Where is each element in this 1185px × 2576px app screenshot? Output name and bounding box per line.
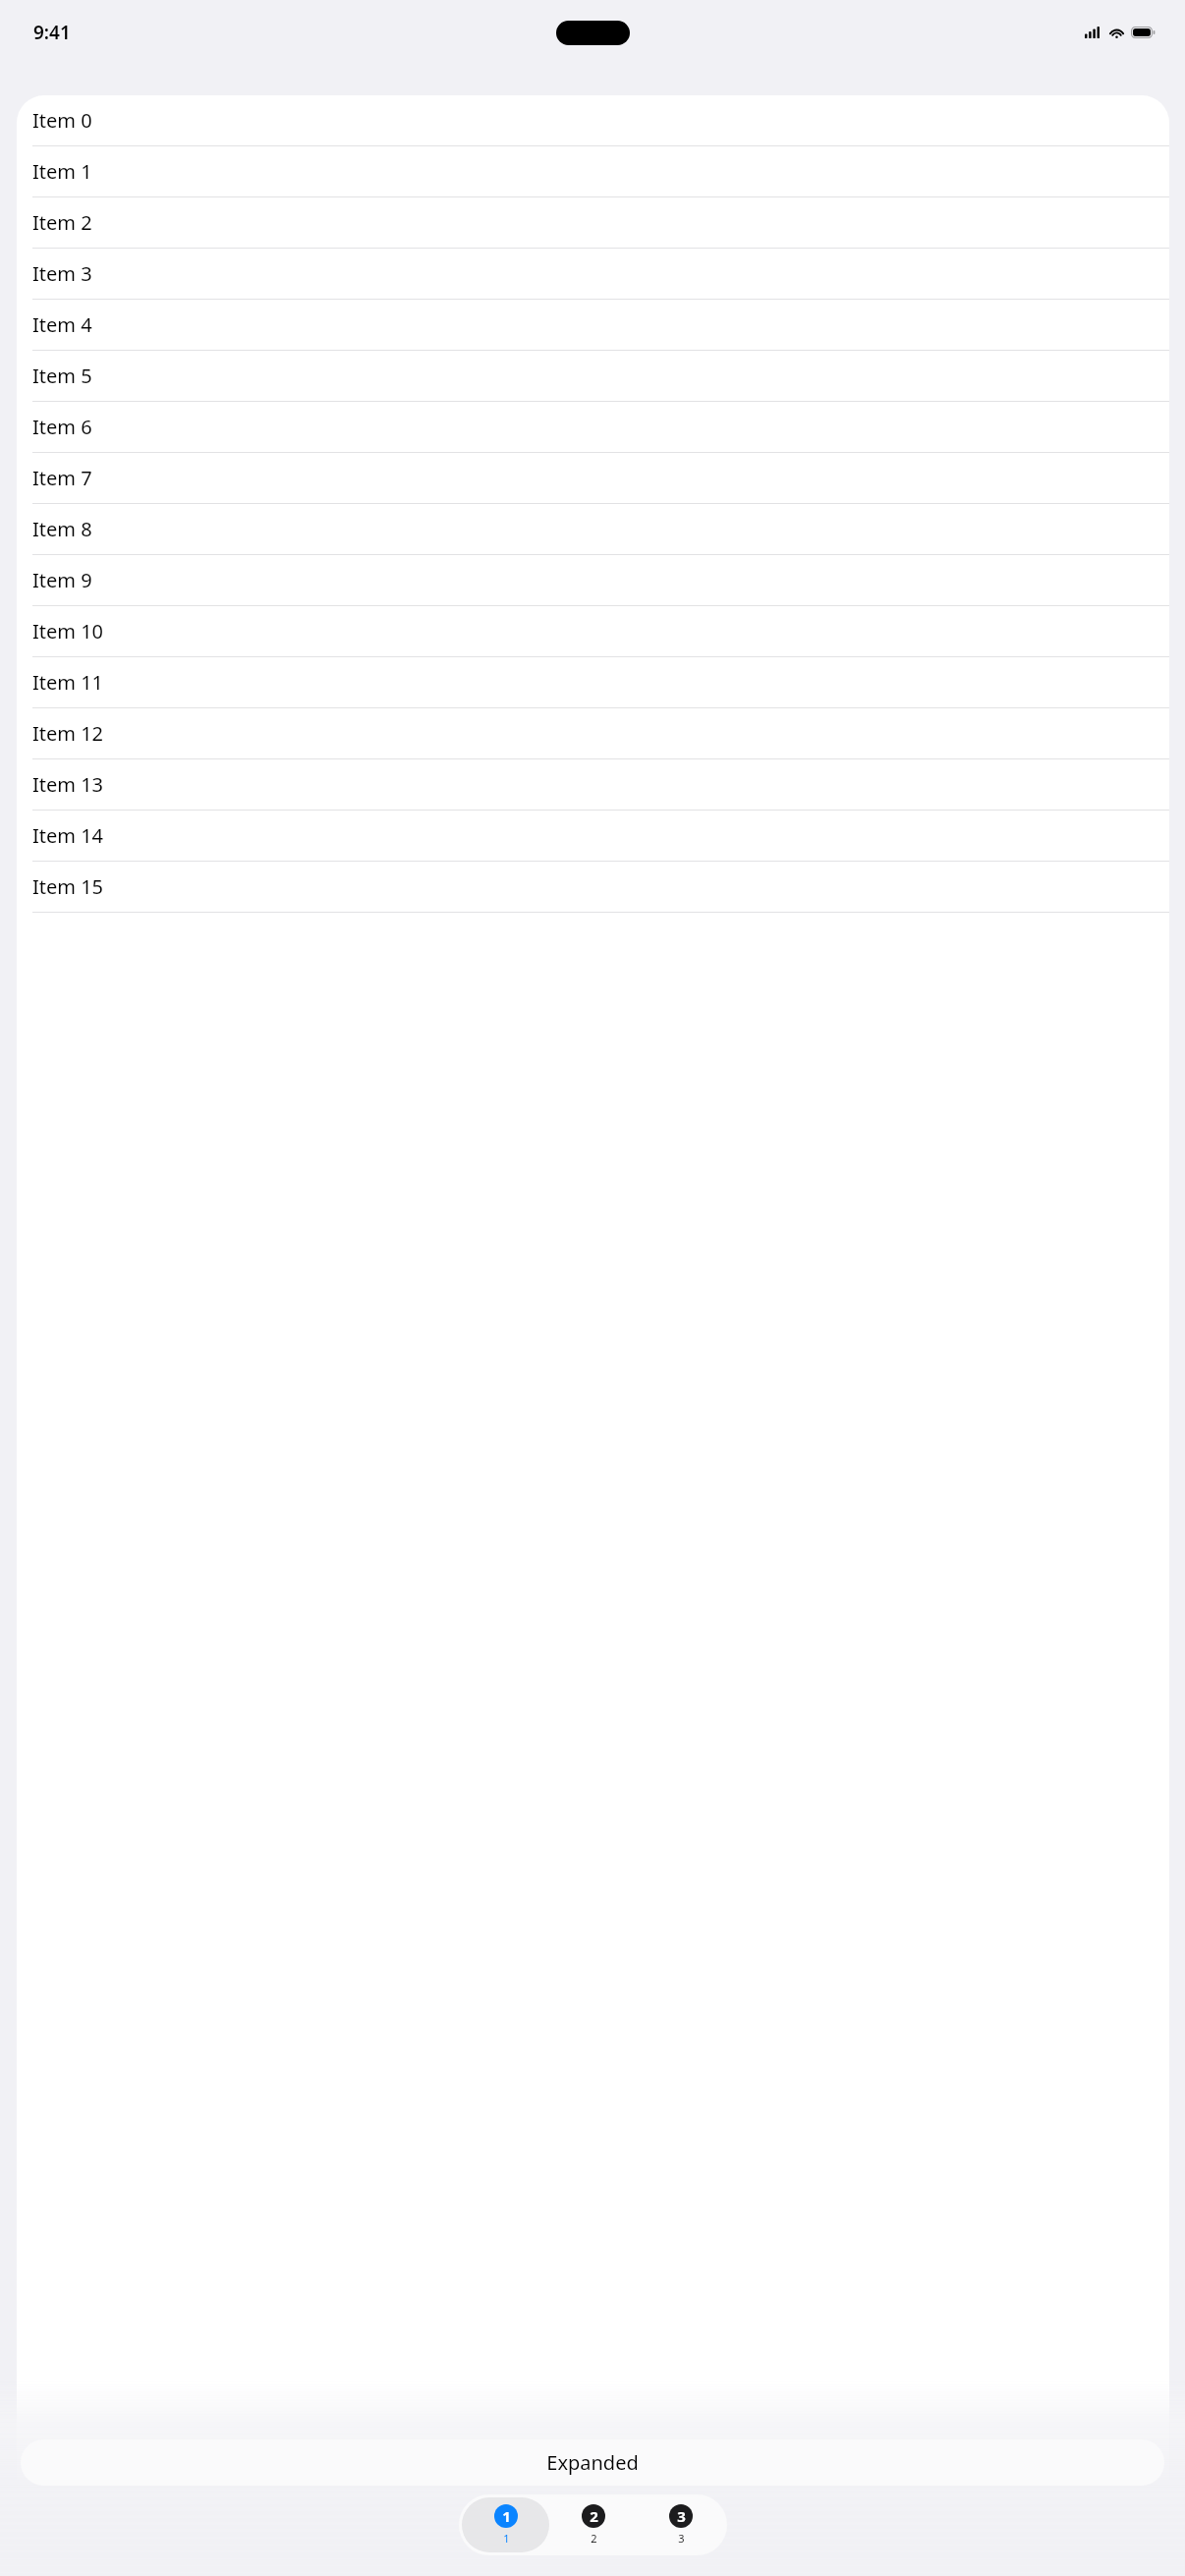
button[interactable]: Item 12: [17, 708, 1169, 759]
staticText: Item 4: [32, 311, 92, 338]
staticText: 3: [677, 2506, 686, 2526]
button[interactable]: Item 0: [17, 95, 1169, 146]
staticText: Item 9: [32, 567, 92, 593]
staticText: Item 5: [32, 363, 92, 389]
button[interactable]: Item 1: [17, 146, 1169, 197]
staticText: Item 15: [32, 873, 104, 900]
button[interactable]: Item 15: [17, 862, 1169, 913]
button[interactable]: Tab 3: [637, 2497, 724, 2552]
button[interactable]: Item 5: [17, 351, 1169, 402]
button[interactable]: Item 8: [17, 504, 1169, 555]
staticText: Item 12: [32, 720, 104, 747]
button[interactable]: Tab 1: [462, 2497, 549, 2552]
button[interactable]: Item 3: [17, 249, 1169, 300]
button[interactable]: Item 7: [17, 453, 1169, 504]
button[interactable]: Item 13: [17, 759, 1169, 811]
staticText: Item 8: [32, 516, 92, 542]
staticText: Item 11: [32, 669, 104, 696]
staticText: Item 13: [32, 771, 104, 798]
button[interactable]: Item 14: [17, 811, 1169, 862]
button[interactable]: Item 2: [17, 197, 1169, 249]
staticText: 9:41: [33, 20, 71, 45]
button[interactable]: Item 6: [17, 402, 1169, 453]
staticText: Expanded: [546, 2449, 639, 2476]
staticText: 1: [502, 2506, 511, 2526]
staticText: Item 7: [32, 465, 92, 491]
staticText: 1: [503, 2531, 510, 2546]
button[interactable]: Item 4: [17, 300, 1169, 351]
button[interactable]: Item 9: [17, 555, 1169, 606]
button[interactable]: Item 10: [17, 606, 1169, 657]
button[interactable]: Item 11: [17, 657, 1169, 708]
staticText: 2: [591, 2531, 597, 2546]
staticText: Item 14: [32, 822, 104, 849]
staticText: Item 1: [32, 158, 92, 185]
staticText: Item 0: [32, 107, 92, 134]
staticText: Item 10: [32, 618, 104, 644]
staticText: Item 6: [32, 414, 92, 440]
staticText: 3: [678, 2531, 685, 2546]
staticText: 2: [590, 2506, 598, 2526]
button[interactable]: Expanded: [21, 2439, 1164, 2486]
button[interactable]: Tab 2: [549, 2497, 637, 2552]
staticText: Item 3: [32, 260, 92, 287]
staticText: Item 2: [32, 209, 92, 236]
